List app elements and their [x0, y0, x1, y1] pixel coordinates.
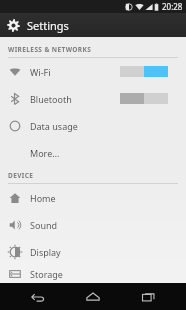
staticText: WIRELESS & NETWORKS — [8, 45, 92, 54]
button[interactable]: Home — [76, 283, 110, 310]
button[interactable]: Display — [0, 238, 186, 265]
button[interactable]: On — [120, 66, 168, 77]
button[interactable]: Sound — [0, 211, 186, 238]
other: Settings — [7, 19, 20, 32]
staticText: Display — [30, 246, 61, 258]
staticText: Data usage — [30, 120, 78, 132]
button[interactable]: Recent apps — [131, 283, 165, 310]
staticText: Bluetooth — [30, 93, 72, 105]
button[interactable]: More… — [0, 139, 186, 166]
staticText: DEVICE — [8, 171, 34, 180]
staticText: Storage — [30, 268, 63, 280]
button[interactable]: Bluetooth — [0, 85, 186, 112]
staticText: Sound — [30, 219, 58, 231]
staticText: Settings — [27, 18, 69, 33]
staticText: More… — [30, 147, 60, 159]
staticText: 20:28 — [162, 1, 183, 12]
button[interactable]: Data usage — [0, 112, 186, 139]
button[interactable]: Storage — [0, 265, 186, 283]
button[interactable]: Wi-Fi — [0, 58, 186, 85]
staticText: Wi-Fi — [30, 66, 51, 78]
staticText: Home — [30, 192, 56, 204]
button[interactable]: Off — [120, 93, 168, 104]
button[interactable]: Settings — [0, 13, 186, 37]
button[interactable]: Back — [21, 283, 55, 310]
button[interactable]: Home — [0, 184, 186, 211]
